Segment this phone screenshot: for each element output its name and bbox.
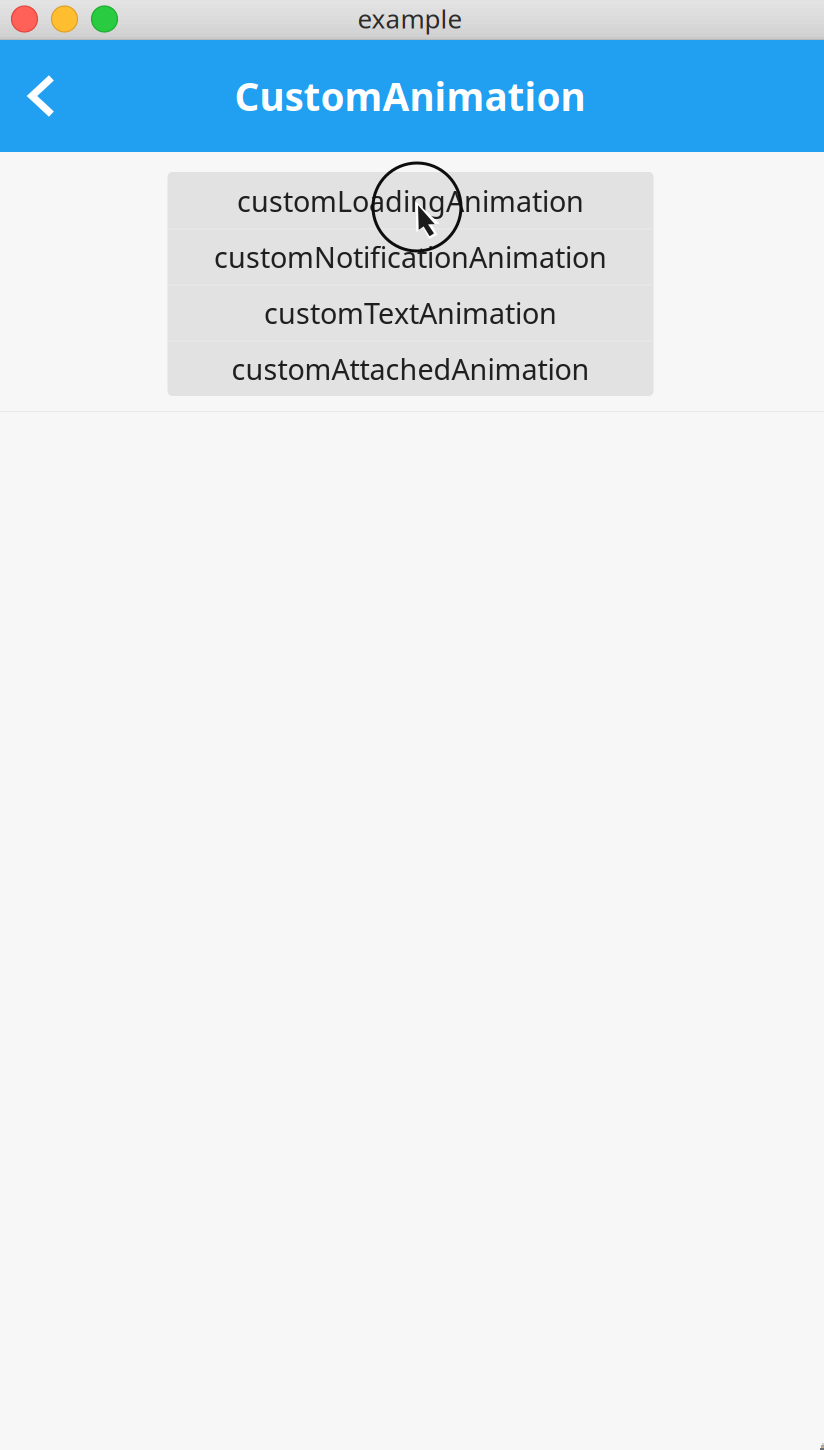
staticText: example [357, 1, 462, 36]
button[interactable]: Zoom [91, 6, 117, 32]
button[interactable]: customTextAnimation [167, 284, 653, 340]
staticText: customLoadingAnimation [237, 181, 584, 220]
button[interactable]: customNotificationAnimation [167, 228, 653, 284]
button[interactable]: Minimize [51, 6, 77, 32]
staticText: customNotificationAnimation [214, 237, 607, 276]
button[interactable]: customAttachedAnimation [167, 340, 653, 396]
button[interactable]: Close [11, 6, 37, 32]
button[interactable]: customLoadingAnimation [167, 172, 653, 228]
staticText: customAttachedAnimation [231, 349, 589, 388]
staticText: CustomAnimation [234, 70, 585, 122]
button[interactable]: Back [0, 40, 73, 152]
staticText: customTextAnimation [264, 293, 557, 332]
